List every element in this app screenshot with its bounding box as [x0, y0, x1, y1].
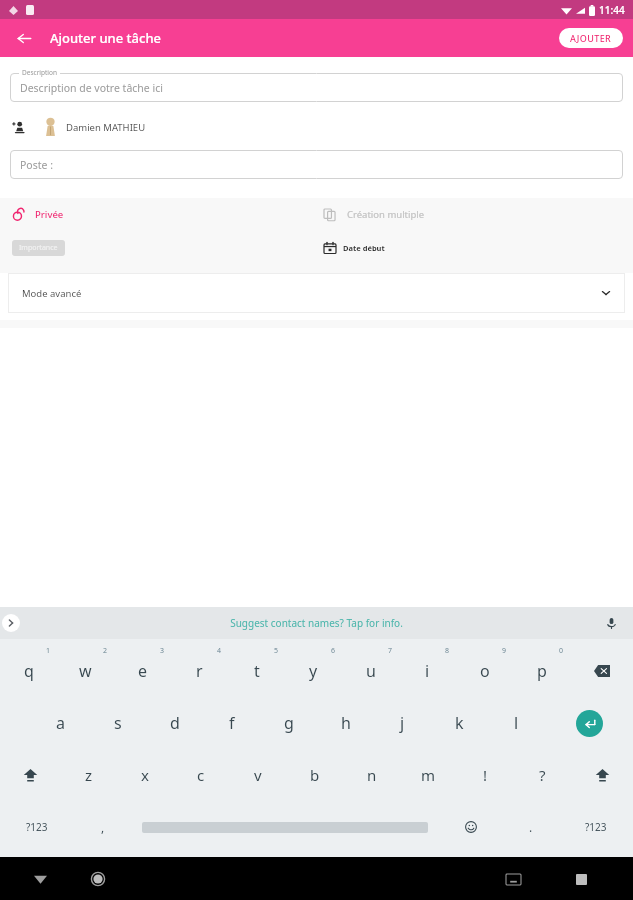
staticText: y: [309, 660, 318, 682]
button[interactable]: u: [342, 645, 399, 697]
staticText: x: [141, 765, 149, 785]
staticText: 2: [103, 646, 108, 656]
button[interactable]: q: [0, 645, 57, 697]
button[interactable]: Home: [82, 863, 114, 895]
button[interactable]: Backspace: [570, 645, 633, 697]
staticText: v: [254, 765, 262, 785]
button[interactable]: v: [229, 749, 286, 801]
staticText: f: [229, 712, 235, 734]
button[interactable]: ?123: [0, 801, 74, 853]
button[interactable]: w: [57, 645, 114, 697]
staticText: t: [254, 660, 260, 682]
button[interactable]: t: [228, 645, 285, 697]
button[interactable]: l: [488, 697, 545, 749]
staticText: ?123: [26, 820, 48, 834]
staticText: e: [138, 660, 148, 682]
staticText: 4: [217, 646, 222, 656]
button[interactable]: Expand suggestions: [2, 614, 20, 632]
button[interactable]: Privée: [0, 198, 316, 231]
button[interactable]: Création multiple: [316, 198, 633, 231]
staticText: d: [170, 712, 180, 734]
button[interactable]: Add person: [0, 114, 633, 140]
staticText: o: [480, 660, 490, 682]
button[interactable]: r: [171, 645, 228, 697]
button[interactable]: Recents: [565, 863, 597, 895]
button[interactable]: Date début: [316, 231, 633, 264]
staticText: Privée: [35, 208, 64, 221]
button[interactable]: Importance: [12, 240, 65, 256]
button[interactable]: Mode avancé: [8, 273, 625, 313]
button[interactable]: .: [502, 801, 559, 853]
staticText: 5: [274, 646, 279, 656]
staticText: Description de votre tâche ici: [20, 81, 163, 95]
staticText: 9: [502, 646, 507, 656]
button[interactable]: h: [317, 697, 374, 749]
button[interactable]: Description de votre tâche ici: [10, 73, 623, 102]
button[interactable]: AJOUTER: [559, 28, 623, 48]
staticText: ?: [539, 765, 546, 785]
button[interactable]: ?123: [559, 801, 633, 853]
staticText: p: [537, 660, 547, 682]
staticText: Ajouter une tâche: [50, 29, 161, 47]
staticText: ,: [101, 819, 105, 835]
staticText: .: [529, 819, 533, 835]
button[interactable]: Suggest contact names? Tap for info.: [230, 616, 403, 630]
button[interactable]: n: [343, 749, 400, 801]
button[interactable]: Switch keyboard: [497, 863, 529, 895]
button[interactable]: ?: [514, 749, 571, 801]
button[interactable]: ,: [74, 801, 131, 853]
button[interactable]: Back: [10, 24, 38, 52]
staticText: 6: [331, 646, 336, 656]
staticText: a: [56, 712, 65, 734]
button[interactable]: s: [89, 697, 146, 749]
button[interactable]: Shift: [571, 749, 633, 801]
button[interactable]: !: [457, 749, 514, 801]
button[interactable]: Hide keyboard: [24, 863, 56, 895]
button[interactable]: i: [399, 645, 456, 697]
staticText: Mode avancé: [22, 287, 82, 300]
staticText: m: [421, 765, 436, 785]
staticText: 3: [160, 646, 165, 656]
button[interactable]: x: [117, 749, 173, 801]
staticText: q: [24, 660, 34, 682]
staticText: j: [400, 712, 405, 734]
button[interactable]: d: [146, 697, 203, 749]
staticText: l: [514, 712, 519, 734]
button[interactable]: Space: [131, 801, 439, 853]
button[interactable]: k: [431, 697, 488, 749]
staticText: b: [310, 765, 320, 785]
button[interactable]: j: [374, 697, 431, 749]
staticText: z: [85, 765, 93, 785]
staticText: 0: [559, 646, 564, 656]
button[interactable]: g: [260, 697, 317, 749]
other: Add person: [12, 120, 26, 134]
button[interactable]: Poste :: [10, 150, 623, 179]
button[interactable]: Emoji: [439, 801, 502, 853]
staticText: Poste :: [20, 158, 53, 172]
staticText: Damien MATHIEU: [66, 121, 146, 134]
button[interactable]: o: [456, 645, 513, 697]
staticText: Création multiple: [347, 208, 425, 221]
button[interactable]: z: [61, 749, 117, 801]
staticText: s: [114, 712, 122, 734]
staticText: c: [197, 765, 205, 785]
staticText: r: [196, 660, 203, 682]
button[interactable]: f: [203, 697, 260, 749]
staticText: w: [79, 660, 92, 682]
staticText: g: [284, 712, 294, 734]
staticText: 7: [388, 646, 393, 656]
staticText: h: [341, 712, 351, 734]
button[interactable]: e: [114, 645, 171, 697]
button[interactable]: Enter: [545, 697, 633, 749]
button[interactable]: m: [400, 749, 457, 801]
button[interactable]: p: [513, 645, 570, 697]
button[interactable]: Shift: [0, 749, 61, 801]
button[interactable]: a: [32, 697, 89, 749]
staticText: u: [366, 660, 376, 682]
button[interactable]: Voice input: [601, 613, 621, 633]
button[interactable]: c: [173, 749, 229, 801]
button[interactable]: y: [285, 645, 342, 697]
staticText: AJOUTER: [570, 32, 612, 44]
staticText: 11:44: [599, 3, 625, 17]
button[interactable]: b: [286, 749, 343, 801]
